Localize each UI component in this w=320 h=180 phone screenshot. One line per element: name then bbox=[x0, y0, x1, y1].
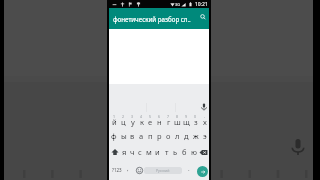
staticText: и bbox=[155, 147, 160, 157]
staticText: с bbox=[138, 147, 142, 157]
staticText: ш bbox=[174, 117, 181, 127]
staticText: у bbox=[131, 117, 135, 127]
staticText: 5 bbox=[149, 114, 152, 119]
staticText: ь bbox=[173, 147, 178, 157]
button[interactable]: м bbox=[144, 144, 153, 160]
staticText: - bbox=[204, 114, 206, 119]
button[interactable]: 1 bbox=[109, 112, 119, 128]
button[interactable]: э bbox=[200, 128, 209, 144]
staticText: г bbox=[167, 117, 171, 127]
staticText: ц bbox=[121, 117, 126, 127]
button[interactable]: . bbox=[185, 164, 193, 176]
staticText: 10:21 bbox=[195, 1, 208, 8]
button[interactable]: 5 bbox=[146, 112, 155, 128]
staticText: 6 bbox=[158, 114, 161, 119]
staticText: , bbox=[127, 165, 129, 173]
button[interactable]: с bbox=[136, 144, 144, 160]
button[interactable]: Backspace bbox=[198, 144, 209, 160]
button[interactable]: , bbox=[124, 164, 132, 176]
button[interactable]: Русский bbox=[144, 167, 182, 174]
button[interactable]: т bbox=[162, 144, 171, 160]
staticText: 0 bbox=[194, 114, 197, 119]
staticText: фонетический разбор сл.. bbox=[113, 15, 191, 23]
staticText: щ bbox=[183, 117, 190, 127]
button[interactable]: Voice input bbox=[199, 102, 209, 112]
button[interactable]: 4 bbox=[137, 112, 146, 128]
button[interactable]: л bbox=[173, 128, 182, 144]
staticText: ы bbox=[121, 131, 127, 141]
button[interactable]: п bbox=[146, 128, 155, 144]
button[interactable]: Search bbox=[197, 11, 208, 22]
button[interactable]: ь bbox=[171, 144, 180, 160]
button[interactable]: ж bbox=[191, 128, 200, 144]
button[interactable]: 2 bbox=[119, 112, 128, 128]
staticText: ю bbox=[191, 147, 197, 157]
staticText: 7 bbox=[167, 114, 170, 119]
button[interactable]: Emoji bbox=[134, 165, 144, 175]
button[interactable]: - bbox=[200, 112, 209, 128]
button[interactable]: р bbox=[155, 128, 164, 144]
button[interactable]: ю bbox=[189, 144, 198, 160]
button[interactable]: 0 bbox=[191, 112, 200, 128]
button[interactable]: 7 bbox=[164, 112, 173, 128]
button[interactable]: Voice search bbox=[288, 137, 307, 156]
button[interactable]: 9 bbox=[182, 112, 191, 128]
button[interactable]: о bbox=[164, 128, 173, 144]
staticText: к bbox=[140, 117, 144, 127]
button[interactable]: Shift bbox=[109, 144, 120, 160]
staticText: а bbox=[139, 131, 144, 141]
staticText: 8 bbox=[176, 114, 179, 119]
button[interactable]: 6 bbox=[155, 112, 164, 128]
staticText: п bbox=[148, 131, 153, 141]
staticText: . bbox=[188, 165, 190, 173]
staticText: 3G bbox=[175, 2, 181, 7]
button[interactable]: ф bbox=[109, 128, 119, 144]
staticText: х bbox=[203, 117, 207, 127]
staticText: 9 bbox=[185, 114, 188, 119]
button[interactable]: в bbox=[128, 128, 137, 144]
button[interactable]: а bbox=[137, 128, 146, 144]
button[interactable]: ч bbox=[128, 144, 136, 160]
button[interactable]: 3 bbox=[128, 112, 137, 128]
staticText: б bbox=[182, 147, 187, 157]
staticText: з bbox=[194, 117, 198, 127]
button[interactable]: б bbox=[180, 144, 189, 160]
staticText: я bbox=[122, 147, 127, 157]
button[interactable]: и bbox=[153, 144, 162, 160]
staticText: ф bbox=[111, 131, 117, 141]
staticText: Русский bbox=[156, 168, 170, 173]
staticText: о bbox=[166, 131, 171, 141]
button[interactable]: я bbox=[120, 144, 128, 160]
staticText: й bbox=[112, 117, 117, 127]
button[interactable]: Enter bbox=[197, 166, 208, 177]
staticText: т bbox=[165, 147, 169, 157]
staticText: 2 bbox=[122, 114, 125, 119]
staticText: в bbox=[130, 131, 135, 141]
staticText: р bbox=[157, 131, 162, 141]
staticText: ж bbox=[193, 131, 199, 141]
staticText: д bbox=[184, 131, 189, 141]
staticText: л bbox=[175, 131, 180, 141]
staticText: ?123 bbox=[112, 167, 122, 173]
button[interactable]: 8 bbox=[173, 112, 182, 128]
staticText: 4 bbox=[140, 114, 143, 119]
staticText: ч bbox=[130, 147, 135, 157]
button[interactable]: ?123 bbox=[110, 164, 124, 176]
button[interactable]: д bbox=[182, 128, 191, 144]
staticText: 3 bbox=[131, 114, 134, 119]
staticText: м bbox=[146, 147, 152, 157]
button[interactable]: ы bbox=[119, 128, 128, 144]
staticText: э bbox=[203, 131, 207, 141]
staticText: е bbox=[148, 117, 153, 127]
staticText: н bbox=[157, 117, 162, 127]
staticText: 1 bbox=[113, 114, 116, 119]
